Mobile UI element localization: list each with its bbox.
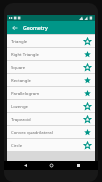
button[interactable]: Lozenge — [7, 100, 95, 112]
button[interactable]: Add favorite — [83, 102, 92, 111]
button[interactable]: Right Triangle — [7, 48, 95, 60]
staticText: Parallelogram — [11, 90, 83, 96]
staticText: Triangle — [11, 38, 83, 44]
staticText: Geometry — [23, 24, 48, 31]
staticText: Trapezoid — [11, 116, 83, 122]
button[interactable]: Remove favorite — [83, 50, 92, 59]
button[interactable]: Remove favorite — [83, 128, 92, 137]
button[interactable]: Triangle — [7, 35, 95, 47]
staticText: Right Triangle — [11, 51, 83, 57]
button[interactable]: Trapezoid — [7, 113, 95, 125]
button[interactable]: Convex quadrilateral — [7, 126, 95, 138]
button[interactable]: Add favorite — [83, 37, 92, 46]
button[interactable]: Add favorite — [83, 141, 92, 150]
button[interactable]: Back — [19, 161, 31, 170]
staticText: Rectangle — [11, 77, 83, 83]
button[interactable]: Home — [45, 161, 57, 170]
button[interactable]: Circle — [7, 139, 95, 151]
button[interactable]: Add favorite — [83, 63, 92, 72]
staticText: Circle — [11, 142, 83, 148]
staticText: Lozenge — [11, 103, 83, 109]
button[interactable]: Rectangle — [7, 74, 95, 86]
button[interactable]: Recent apps — [72, 161, 84, 170]
button[interactable]: Remove favorite — [83, 76, 92, 85]
button[interactable]: Square — [7, 61, 95, 73]
button[interactable]: Parallelogram — [7, 87, 95, 99]
button[interactable]: Add favorite — [83, 115, 92, 124]
staticText: Square — [11, 64, 83, 70]
button[interactable]: Back — [10, 23, 20, 33]
button[interactable]: Remove favorite — [83, 89, 92, 98]
staticText: Convex quadrilateral — [11, 129, 83, 135]
